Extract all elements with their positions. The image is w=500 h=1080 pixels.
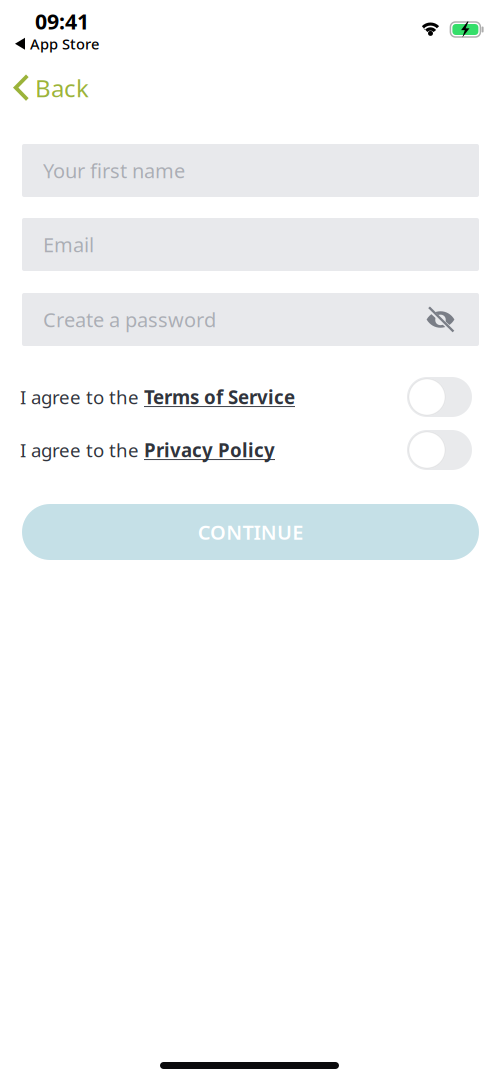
staticText: I agree to the xyxy=(20,385,144,409)
staticText: Back xyxy=(35,72,89,104)
button[interactable]: I agree to the Privacy Policy xyxy=(407,430,472,470)
staticText: CONTINUE xyxy=(198,519,303,545)
button[interactable]: Privacy Policy xyxy=(144,438,275,462)
button[interactable]: I agree to the Terms of Service xyxy=(407,377,472,417)
button[interactable]: Back xyxy=(0,63,103,113)
button[interactable]: CONTINUE xyxy=(22,504,479,560)
staticText: Privacy Policy xyxy=(144,438,275,462)
button[interactable]: Show password xyxy=(426,306,455,332)
staticText: Create a password xyxy=(43,306,216,333)
button[interactable]: Create a password xyxy=(22,293,479,346)
staticText: I agree to the xyxy=(20,438,144,462)
staticText: Email xyxy=(43,231,94,258)
button[interactable]: Email xyxy=(22,218,479,271)
button[interactable]: Terms of Service xyxy=(144,385,295,409)
button[interactable]: Your first name xyxy=(22,144,479,197)
staticText: Terms of Service xyxy=(144,385,295,409)
staticText: 09:41 xyxy=(35,7,89,35)
staticText: App Store xyxy=(30,34,99,53)
staticText: Your first name xyxy=(43,157,185,184)
